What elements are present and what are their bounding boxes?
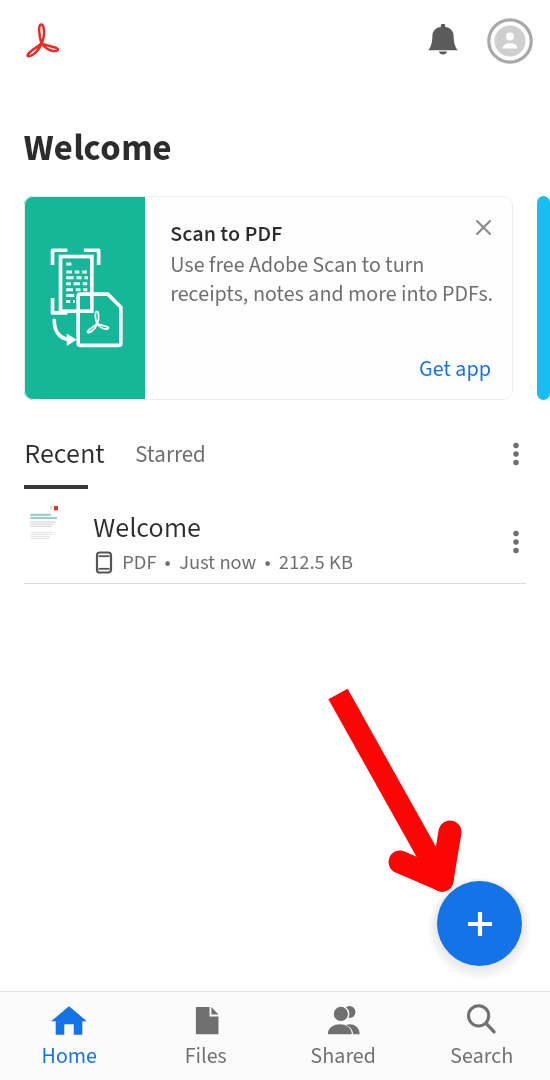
button[interactable]: Scan to PDF	[24, 196, 513, 400]
button[interactable]: Shared	[274, 992, 412, 1080]
button[interactable]: Dismiss	[466, 210, 500, 244]
button[interactable]: Welcome	[0, 501, 550, 583]
button[interactable]: Get app	[419, 353, 491, 384]
button[interactable]	[537, 196, 550, 400]
button[interactable]: Starred	[135, 438, 206, 471]
button[interactable]: Create new file	[437, 881, 522, 966]
staticText: Files	[184, 1040, 227, 1071]
button[interactable]: Adobe Acrobat	[21, 16, 65, 60]
staticText: Recent	[24, 434, 105, 474]
staticText: Starred	[135, 438, 206, 471]
staticText: Welcome	[23, 122, 171, 175]
button[interactable]: File options	[490, 516, 542, 568]
staticText: Shared	[310, 1040, 376, 1071]
button[interactable]: Notifications	[418, 15, 468, 65]
staticText: Scan to PDF	[170, 218, 282, 249]
button[interactable]: Recent	[24, 434, 105, 474]
button[interactable]: Search	[412, 992, 550, 1080]
staticText: Search	[450, 1040, 513, 1071]
button[interactable]: Profile	[484, 15, 536, 67]
staticText: PDF • Just now • 212.5 KB	[122, 548, 353, 577]
staticText: Home	[41, 1040, 97, 1071]
button[interactable]: Home	[0, 992, 137, 1080]
button[interactable]: More options	[490, 428, 542, 480]
staticText: Welcome	[93, 508, 201, 548]
button[interactable]: Files	[137, 992, 274, 1080]
staticText: Use free Adobe Scan to turn receipts, no…	[170, 249, 493, 310]
